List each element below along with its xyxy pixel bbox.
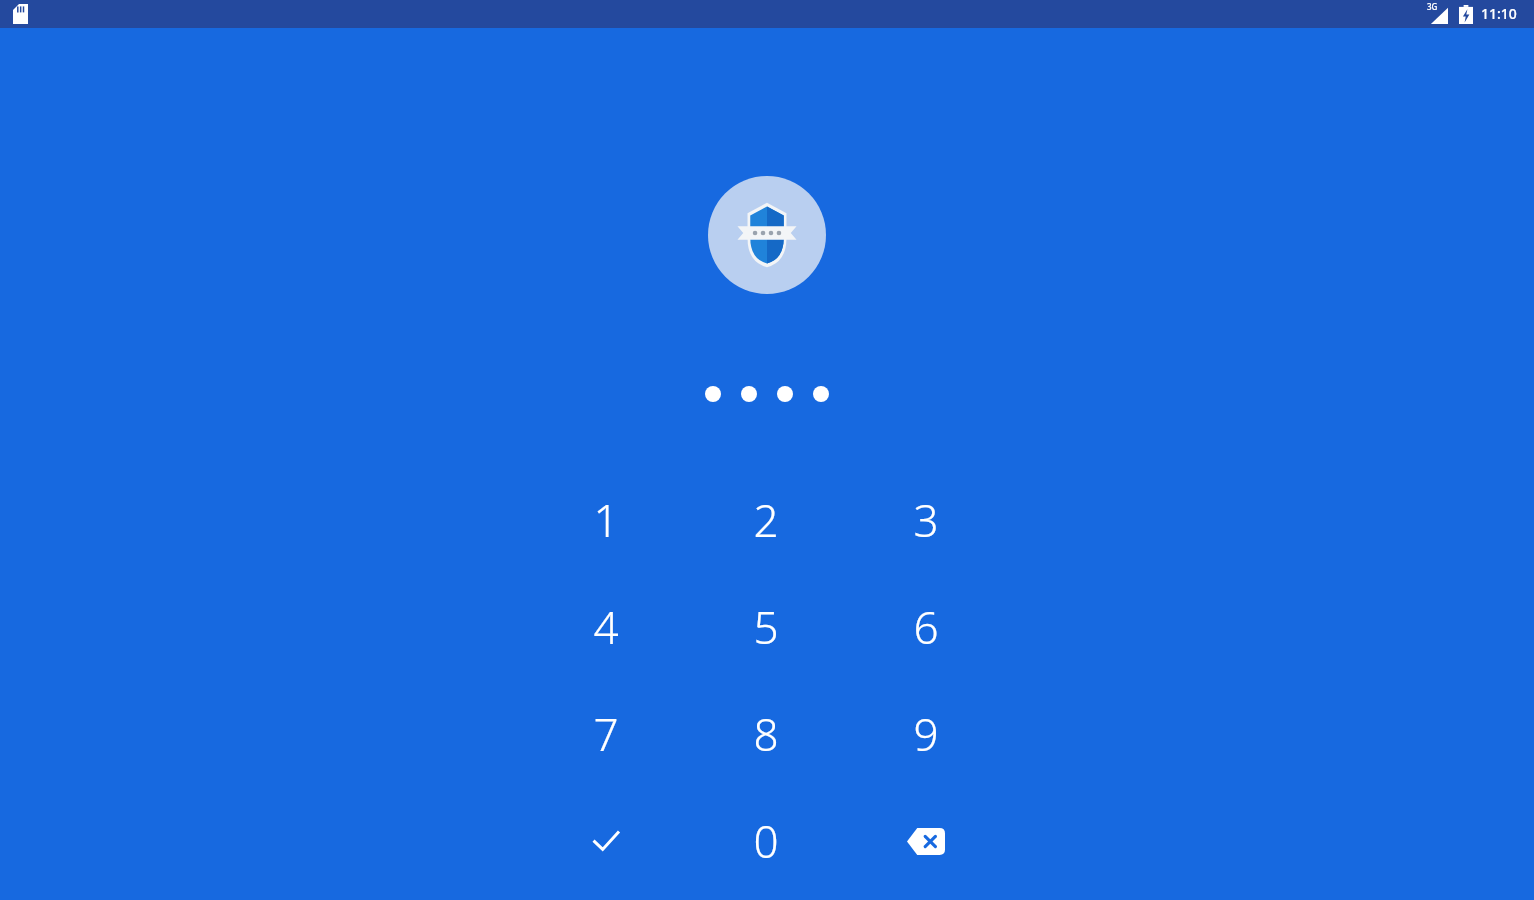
staticText: 1: [593, 490, 619, 550]
button[interactable]: 8: [706, 686, 826, 782]
staticText: 4: [593, 597, 619, 657]
staticText: 2: [753, 490, 779, 550]
button[interactable]: 4: [546, 579, 666, 675]
button[interactable]: 5: [706, 579, 826, 675]
button[interactable]: 1: [546, 472, 666, 568]
staticText: 3: [913, 490, 939, 550]
button[interactable]: Backspace: [866, 793, 986, 889]
staticText: 9: [913, 704, 939, 764]
button[interactable]: 2: [706, 472, 826, 568]
button[interactable]: 0: [706, 793, 826, 889]
staticText: 6: [913, 597, 939, 657]
staticText: 0: [753, 811, 779, 871]
button[interactable]: 7: [546, 686, 666, 782]
staticText: 7: [593, 704, 619, 764]
button[interactable]: 6: [866, 579, 986, 675]
staticText: 8: [753, 704, 779, 764]
button[interactable]: 3: [866, 472, 986, 568]
button[interactable]: 9: [866, 686, 986, 782]
staticText: 11:10: [1481, 4, 1517, 23]
staticText: 3G: [1427, 1, 1438, 12]
staticText: 5: [753, 597, 779, 657]
button[interactable]: Confirm: [546, 793, 666, 889]
